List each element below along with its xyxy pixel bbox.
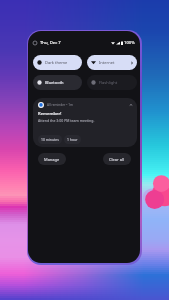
staticText: Flashlight	[99, 80, 118, 85]
staticText: 100%	[124, 40, 135, 46]
button[interactable]: Internet	[87, 55, 137, 70]
staticText: All reminder • 1m	[47, 103, 74, 107]
staticText: Thu, Dec 7	[40, 40, 61, 46]
staticText: 10 minutes	[41, 137, 59, 142]
staticText: Bluetooth	[45, 80, 64, 85]
button[interactable]: Dark theme	[33, 55, 82, 70]
staticText: Internet	[99, 60, 115, 65]
button[interactable]: 10 minutes	[38, 135, 62, 144]
staticText: Dark theme	[45, 60, 68, 65]
button[interactable]: Flashlight	[87, 75, 137, 90]
staticText: Remember!	[38, 111, 62, 117]
staticText: Attend the 3:00 PM team meeting.	[38, 118, 95, 123]
staticText: Manage	[44, 157, 60, 162]
staticText: 1 hour	[67, 137, 78, 142]
button[interactable]: 1 hour	[64, 135, 81, 144]
staticText: Clear all	[109, 157, 125, 162]
button[interactable]: Bluetooth	[33, 75, 82, 90]
button[interactable]: Manage	[38, 153, 66, 165]
button[interactable]: Clear all	[103, 153, 131, 165]
button[interactable]: All reminder • 1m	[33, 98, 137, 147]
